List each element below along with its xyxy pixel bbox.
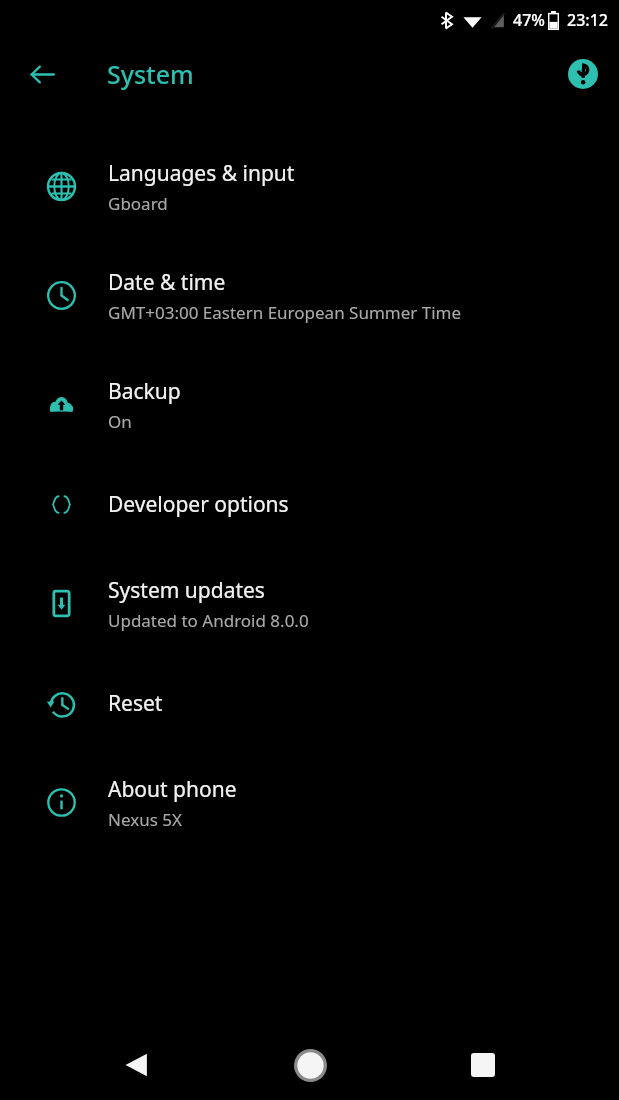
- staticText: Backup: [108, 377, 181, 406]
- staticText: Languages & input: [108, 159, 295, 188]
- button[interactable]: Back: [14, 46, 70, 102]
- button[interactable]: Date & time: [0, 241, 619, 350]
- button[interactable]: Back: [105, 1033, 169, 1097]
- staticText: 47%: [513, 9, 545, 31]
- button[interactable]: Reset: [0, 658, 619, 748]
- staticText: Reset: [108, 689, 163, 718]
- button[interactable]: Home: [278, 1033, 342, 1097]
- staticText: Nexus 5X: [108, 808, 182, 831]
- staticText: Gboard: [108, 192, 168, 215]
- button[interactable]: Languages & input: [0, 132, 619, 241]
- button[interactable]: Backup: [0, 350, 619, 459]
- staticText: About phone: [108, 775, 237, 804]
- button[interactable]: Recent apps: [451, 1033, 515, 1097]
- staticText: 23:12: [567, 9, 608, 31]
- staticText: On: [108, 410, 132, 433]
- staticText: GMT+03:00 Eastern European Summer Time: [108, 301, 462, 324]
- staticText: System: [107, 57, 194, 91]
- staticText: Date & time: [108, 268, 226, 297]
- button[interactable]: System updates: [0, 549, 619, 658]
- button[interactable]: Help: [559, 50, 607, 98]
- staticText: System updates: [108, 576, 265, 605]
- staticText: Updated to Android 8.0.0: [108, 609, 309, 632]
- staticText: Developer options: [108, 490, 289, 519]
- button[interactable]: About phone: [0, 748, 619, 857]
- button[interactable]: Developer options: [0, 459, 619, 549]
